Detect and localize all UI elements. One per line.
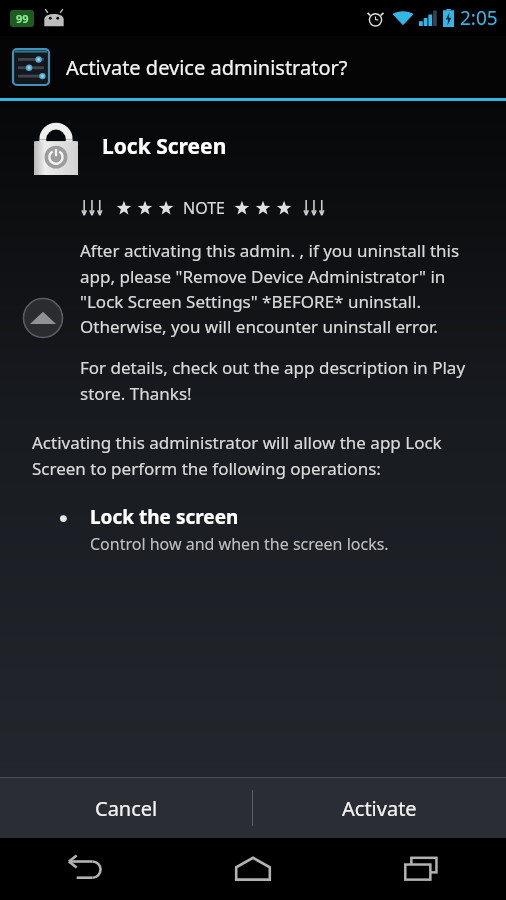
staticText: For details, check out the app descripti… <box>80 356 480 405</box>
staticText: 99 <box>16 11 29 26</box>
staticText: After activating this admin. , if you un… <box>80 239 480 338</box>
staticText: Lock the screen <box>90 504 239 530</box>
button[interactable]: Home <box>168 838 337 900</box>
button[interactable]: Cancel <box>0 778 252 838</box>
staticText: Control how and when the screen locks. <box>90 533 389 555</box>
button[interactable]: Back <box>0 838 168 900</box>
staticText: Activating this administrator will allow… <box>32 431 480 480</box>
staticText: NOTE <box>183 197 225 219</box>
staticText: Activate <box>342 795 417 822</box>
staticText: Lock Screen <box>102 132 227 161</box>
staticText: 2:05 <box>460 5 498 31</box>
button[interactable]: Recent apps <box>337 838 506 900</box>
staticText: Cancel <box>95 795 158 822</box>
staticText: Activate device administrator? <box>66 54 348 81</box>
button[interactable]: Activate <box>253 778 506 838</box>
button[interactable]: Scroll up <box>22 297 64 339</box>
